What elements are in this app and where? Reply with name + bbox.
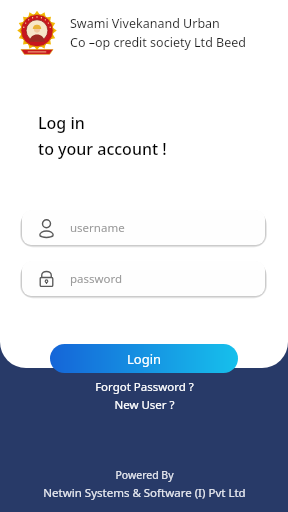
staticText: Login bbox=[127, 350, 162, 368]
button[interactable]: username bbox=[22, 210, 265, 245]
staticText: Co –op credit society Ltd Beed bbox=[70, 34, 246, 51]
staticText: New User ? bbox=[114, 397, 175, 413]
button[interactable]: password bbox=[22, 261, 265, 296]
staticText: Log in bbox=[38, 112, 85, 134]
button[interactable]: Forgot Password ? bbox=[89, 378, 200, 396]
button[interactable]: New User ? bbox=[108, 396, 181, 414]
staticText: Powered By bbox=[115, 468, 174, 482]
staticText: username bbox=[70, 220, 125, 236]
staticText: password bbox=[70, 271, 123, 287]
staticText: to your account ! bbox=[38, 138, 167, 160]
staticText: Forgot Password ? bbox=[95, 379, 194, 395]
button[interactable]: Login bbox=[50, 344, 238, 373]
staticText: Swami Vivekanand Urban bbox=[70, 15, 220, 32]
staticText: Netwin Systems & Software (I) Pvt Ltd bbox=[43, 485, 246, 501]
